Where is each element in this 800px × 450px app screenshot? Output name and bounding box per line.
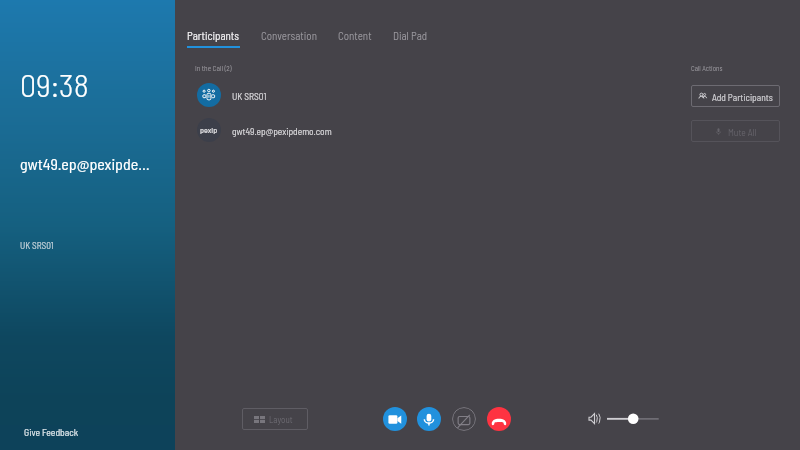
- staticText: UK SRS01: [232, 90, 267, 101]
- button[interactable]: UK SRS01: [185, 77, 515, 113]
- button[interactable]: Add Participants: [691, 85, 780, 107]
- staticText: Content: [338, 29, 372, 42]
- staticText: Add Participants: [712, 91, 773, 102]
- staticText: 09:38: [20, 65, 89, 103]
- button[interactable]: Video camera: [383, 407, 407, 431]
- button[interactable]: Microphone: [417, 407, 441, 431]
- button[interactable]: Conversation: [256, 29, 322, 48]
- button[interactable]: Mute All: [691, 120, 780, 142]
- staticText: Mute All: [728, 126, 757, 137]
- staticText: Conversation: [261, 29, 317, 42]
- button[interactable]: Dial Pad: [388, 29, 433, 48]
- button[interactable]: Volume: [585, 408, 663, 430]
- button[interactable]: Layout: [242, 408, 308, 430]
- staticText: In the Call (2): [195, 64, 232, 73]
- staticText: UK SRS01: [20, 240, 54, 251]
- staticText: pexip: [200, 125, 218, 135]
- button[interactable]: Content: [333, 29, 377, 48]
- button[interactable]: End call: [487, 407, 511, 431]
- button[interactable]: Participants: [182, 29, 245, 48]
- staticText: gwt49.ep@pexipdemo.com: [232, 125, 332, 136]
- button[interactable]: Share screen: [452, 407, 476, 431]
- staticText: Layout: [269, 414, 293, 425]
- button[interactable]: Give Feedback: [24, 426, 79, 438]
- button[interactable]: pexip: [185, 112, 515, 148]
- staticText: Participants: [187, 29, 240, 42]
- staticText: gwt49.ep@pexipde…: [20, 154, 150, 173]
- staticText: Dial Pad: [393, 29, 428, 42]
- staticText: Call Actions: [691, 64, 723, 72]
